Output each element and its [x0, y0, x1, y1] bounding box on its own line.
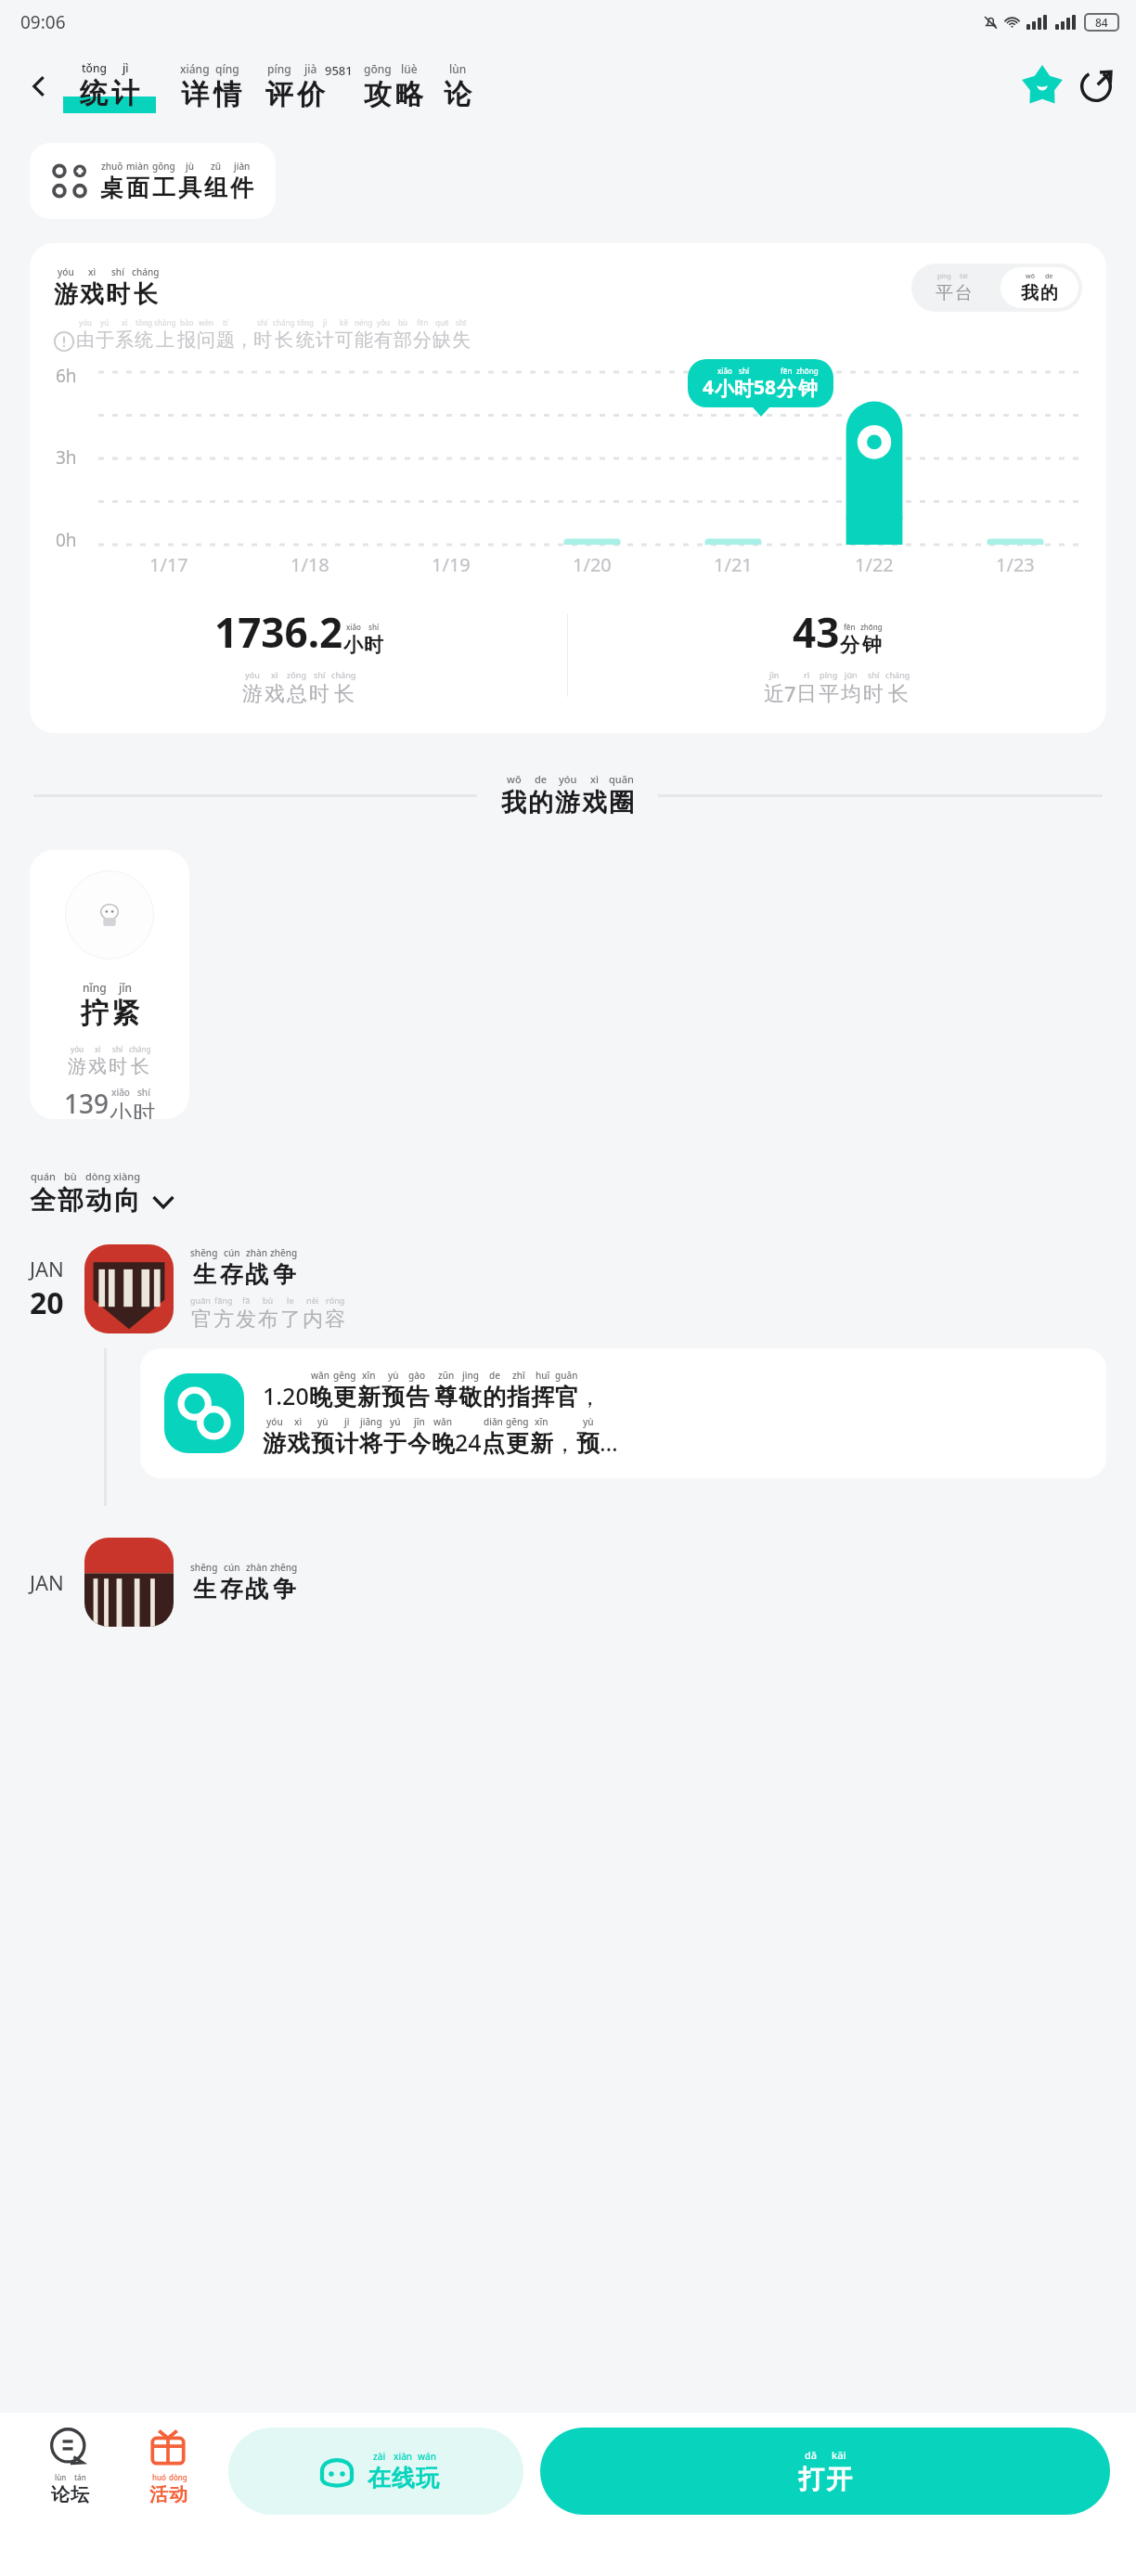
staticText: 1.20 [263, 1380, 309, 1411]
staticText: 报 [177, 328, 196, 352]
button[interactable]: JAN [30, 1538, 1136, 1627]
staticText: quán [31, 1169, 56, 1183]
staticText: zhēng [270, 1246, 298, 1259]
staticText: 时 [109, 1055, 127, 1078]
staticText: guān [190, 1294, 212, 1306]
staticText: yǒu [377, 317, 391, 328]
staticText: 指 [507, 1383, 530, 1411]
staticText: 统 [296, 328, 315, 352]
staticText: 1/19 [432, 552, 471, 577]
staticText: 拧 [81, 996, 109, 1031]
button[interactable]: lùn [20, 2428, 119, 2506]
staticText: 戏 [265, 681, 285, 707]
button[interactable]: zhuō [30, 143, 276, 219]
button[interactable]: tǒng [63, 60, 156, 113]
button[interactable]: JAN [30, 1244, 1136, 1333]
staticText: 计 [335, 1429, 358, 1458]
staticText: 新 [357, 1383, 381, 1411]
button[interactable]: nǐng [30, 850, 189, 1119]
staticText: 开 [826, 2463, 852, 2495]
staticText: xīn [362, 1369, 376, 1382]
staticText: píng [937, 272, 951, 281]
staticText: 争 [273, 1575, 296, 1604]
staticText: 可 [335, 328, 354, 352]
staticText: xì [294, 1415, 303, 1428]
staticText: 部 [394, 328, 412, 352]
staticText: 容 [325, 1307, 345, 1333]
staticText: tǒng [297, 317, 314, 328]
button[interactable]: wǒ [1000, 267, 1078, 308]
staticText: 方 [213, 1307, 234, 1333]
button[interactable]: lùn [444, 61, 471, 112]
staticText: lùn [449, 61, 467, 76]
button[interactable]: Share [1071, 61, 1121, 111]
staticText: 近 [764, 681, 784, 707]
staticText: 戏 [88, 1055, 107, 1078]
button[interactable]: 1.20 [140, 1348, 1106, 1478]
button[interactable]: gōng [364, 61, 423, 112]
staticText: xiǎo [346, 622, 361, 632]
staticText: cháng [132, 265, 160, 278]
button[interactable]: Favorite [1017, 61, 1067, 111]
staticText: 今 [407, 1429, 431, 1458]
staticText: 件 [230, 174, 253, 202]
staticText: 时 [364, 633, 383, 657]
staticText: 在 [368, 2464, 391, 2492]
staticText: gōng [152, 160, 175, 173]
staticText: quē [435, 317, 449, 328]
button[interactable]: Back [15, 62, 63, 110]
staticText: néng [355, 317, 373, 328]
staticText: yóu [79, 317, 93, 328]
staticText: rì [804, 669, 810, 680]
staticText: 我 [501, 787, 526, 818]
button[interactable]: zài [228, 2428, 523, 2515]
staticText: 部 [58, 1184, 84, 1217]
staticText: 圈 [609, 787, 634, 818]
staticText: xīn [535, 1415, 549, 1428]
staticText: shàng [154, 317, 176, 328]
staticText: 09:06 [20, 10, 66, 34]
staticText: wǎn [311, 1369, 330, 1382]
staticText: 1/23 [996, 552, 1035, 577]
button[interactable]: huó [119, 2428, 217, 2506]
staticText: JAN [30, 1568, 64, 1596]
button[interactable]: píng [265, 61, 353, 112]
staticText: jìng [462, 1369, 479, 1382]
staticText: 长 [134, 279, 158, 310]
staticText: wǒ [507, 772, 522, 786]
button[interactable]: dǎ [540, 2428, 1110, 2515]
staticText: 钟 [862, 633, 882, 657]
staticText: de [535, 772, 548, 786]
staticText: jì [323, 317, 328, 328]
staticText: 工 [152, 174, 175, 202]
staticText: 长 [131, 1055, 149, 1078]
staticText: 的 [528, 787, 553, 818]
staticText: 生 [193, 1575, 216, 1604]
staticText: 的 [1040, 282, 1058, 304]
button[interactable]: píng [911, 264, 997, 312]
staticText: xiǎo [717, 366, 732, 376]
staticText: 时 [309, 681, 329, 707]
staticText: 长 [888, 681, 909, 707]
staticText: cháng [273, 317, 295, 328]
staticText: xì [590, 772, 599, 786]
staticText: 更 [333, 1383, 356, 1411]
button[interactable]: quán [30, 1169, 177, 1217]
staticText: tí [223, 317, 228, 328]
button[interactable]: xiáng [180, 61, 241, 112]
staticText: 失 [452, 328, 471, 352]
staticText: 长 [334, 681, 355, 707]
staticText: fā [242, 1294, 251, 1306]
staticText: 时 [863, 681, 884, 707]
staticText: 1/22 [855, 552, 894, 577]
staticText: zǔ [211, 160, 222, 173]
staticText: 发 [236, 1307, 256, 1333]
staticText: shí [368, 622, 380, 632]
staticText: 价 [297, 77, 325, 112]
staticText: ， [578, 1383, 601, 1411]
staticText: 动 [85, 1184, 111, 1217]
staticText: 9581 [325, 62, 353, 79]
staticText: 情 [213, 77, 241, 112]
staticText: guān [555, 1369, 578, 1382]
staticText: gào [408, 1369, 426, 1382]
